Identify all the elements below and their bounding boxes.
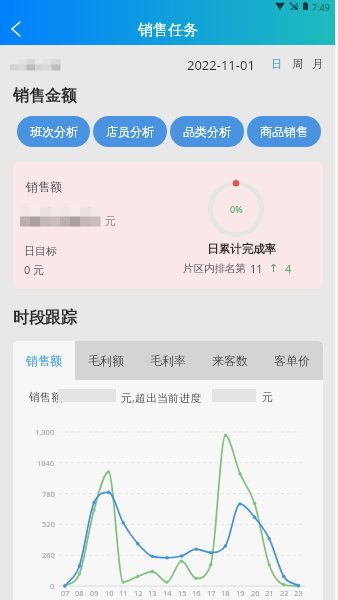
staticText: 日累计完成率 xyxy=(207,242,276,256)
staticText: 520 xyxy=(42,519,55,529)
staticText: 07 xyxy=(61,588,70,598)
staticText: 来客数 xyxy=(212,353,248,368)
staticText: 17 xyxy=(207,588,216,598)
staticText: 日目标 xyxy=(24,244,57,258)
button[interactable]: 店员分析 xyxy=(93,116,167,147)
staticText: 销售额 xyxy=(26,353,62,368)
staticText: 13 xyxy=(148,588,157,598)
staticText: 09 xyxy=(90,588,99,598)
staticText: 10 xyxy=(105,588,114,598)
button[interactable]: 月 xyxy=(312,57,323,71)
staticText: 12 xyxy=(134,588,143,598)
staticText: 元 xyxy=(262,390,273,404)
staticText: 销售额 xyxy=(29,390,62,404)
button[interactable]: 客单价 xyxy=(261,341,323,380)
button[interactable]: 毛利率 xyxy=(137,341,199,380)
button[interactable]: 销售额 xyxy=(13,341,75,380)
staticText: 毛利额 xyxy=(88,353,124,368)
button[interactable]: 品类分析 xyxy=(170,116,244,147)
staticText: 780 xyxy=(42,489,55,499)
staticText: 0 xyxy=(50,581,55,591)
staticText: 15 xyxy=(178,588,187,598)
staticText: 2022-11-01 xyxy=(187,56,255,74)
button[interactable]: 商品销售 xyxy=(247,116,321,147)
staticText: 毛利率 xyxy=(150,353,186,368)
staticText: 1040 xyxy=(37,458,55,468)
staticText: 片区内排名第 xyxy=(183,262,246,275)
staticText: 19 xyxy=(236,588,245,598)
button[interactable]: 毛利额 xyxy=(75,341,137,380)
staticText: 20 xyxy=(251,588,260,598)
staticText: 22 xyxy=(280,588,289,598)
staticText: 4 xyxy=(285,261,292,276)
staticText: 16 xyxy=(192,588,201,598)
staticText: 11 xyxy=(250,261,263,276)
staticText: 商品销售 xyxy=(260,124,308,139)
staticText: 时段跟踪 xyxy=(13,308,77,328)
staticText: 23 xyxy=(294,588,303,598)
staticText: 260 xyxy=(42,550,55,560)
staticText: 销售额 xyxy=(26,179,62,194)
staticText: 11 xyxy=(119,588,128,598)
staticText: 销售任务 xyxy=(138,21,198,40)
staticText: 18 xyxy=(221,588,230,598)
button[interactable]: 日 xyxy=(271,57,282,71)
staticText: ↑ xyxy=(269,262,279,275)
staticText: 客单价 xyxy=(274,353,310,368)
staticText: 0 元 xyxy=(24,262,45,277)
staticText: 元,超出当前进度 xyxy=(121,390,201,405)
staticText: 21 xyxy=(265,588,274,598)
button[interactable]: 周 xyxy=(292,57,303,71)
staticText: 0% xyxy=(230,203,243,215)
staticText: 14 xyxy=(163,588,172,598)
staticText: 08 xyxy=(75,588,84,598)
staticText: 品类分析 xyxy=(183,124,231,139)
button[interactable]: 来客数 xyxy=(199,341,261,380)
staticText: 1,300 xyxy=(35,427,55,437)
staticText: 7:49 xyxy=(312,1,330,13)
button[interactable]: Back xyxy=(1,14,31,44)
staticText: 店员分析 xyxy=(106,124,154,139)
button[interactable]: 班次分析 xyxy=(17,116,90,147)
staticText: 元 xyxy=(105,214,116,228)
staticText: 销售金额 xyxy=(13,86,77,106)
staticText: 班次分析 xyxy=(30,124,78,139)
